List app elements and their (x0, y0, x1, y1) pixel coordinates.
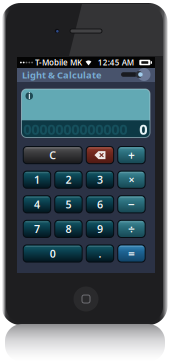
button[interactable]: 3 (86, 171, 114, 189)
staticText: ÷ (128, 221, 135, 237)
button[interactable]: 6 (86, 195, 114, 213)
staticText: 1 (34, 173, 40, 187)
button[interactable]: ÷ (117, 220, 146, 238)
button[interactable]: C (23, 146, 83, 164)
staticText: 6 (97, 197, 103, 211)
button[interactable]: = (117, 244, 146, 263)
button[interactable]: 9 (86, 220, 114, 238)
button[interactable]: Flashlight (119, 68, 151, 81)
staticText: 4 (34, 197, 40, 211)
staticText: × (128, 173, 134, 187)
staticText: . (98, 246, 101, 261)
staticText: 2 (65, 173, 71, 187)
button[interactable]: 1 (23, 171, 51, 189)
button[interactable]: 4 (23, 195, 51, 213)
staticText: 0 (139, 119, 147, 139)
button[interactable]: 7 (23, 220, 51, 238)
button[interactable]: 2 (54, 171, 83, 189)
staticText: + (128, 147, 135, 163)
button[interactable] (86, 146, 114, 164)
button[interactable]: 8 (54, 220, 83, 238)
staticText: 9 (97, 222, 103, 236)
staticText: 8 (65, 222, 71, 236)
staticText: Light & Calculate (22, 69, 102, 81)
staticText: = (128, 245, 135, 261)
button[interactable]: + (117, 146, 146, 164)
staticText: 7 (34, 222, 40, 236)
staticText: 0000000000000 (23, 119, 127, 139)
staticText: C (49, 148, 56, 162)
staticText: T-Mobile MK (35, 57, 82, 68)
staticText: 0 (50, 246, 56, 261)
staticText: 3 (97, 173, 103, 187)
button[interactable]: − (117, 195, 146, 213)
button[interactable]: 5 (54, 195, 83, 213)
button[interactable]: . (86, 244, 114, 263)
staticText: 12:45 AM (98, 57, 134, 68)
staticText: i (28, 91, 30, 101)
staticText: 5 (65, 197, 71, 211)
button[interactable]: Info (24, 90, 35, 101)
staticText: − (128, 196, 135, 212)
button[interactable]: 0 (23, 244, 83, 263)
button[interactable]: × (117, 171, 146, 189)
